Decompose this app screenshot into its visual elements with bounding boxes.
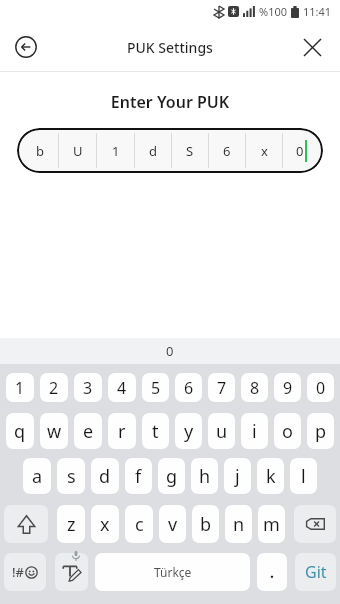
button[interactable]: c bbox=[125, 505, 153, 543]
button[interactable]: z bbox=[57, 505, 85, 543]
staticText: 3 bbox=[83, 377, 93, 399]
staticText: y bbox=[184, 419, 194, 444]
staticText: 11:41 bbox=[303, 4, 332, 19]
button[interactable]: r bbox=[108, 413, 136, 449]
button[interactable]: 8 bbox=[241, 373, 268, 402]
staticText: o bbox=[282, 419, 293, 444]
button[interactable]: . bbox=[257, 553, 287, 591]
button[interactable]: w bbox=[40, 413, 68, 449]
staticText: z bbox=[67, 512, 76, 537]
staticText: . bbox=[270, 563, 274, 582]
button[interactable]: Türkçe bbox=[95, 553, 250, 591]
button[interactable]: b bbox=[192, 505, 219, 543]
staticText: 4 bbox=[117, 377, 127, 399]
staticText: Git bbox=[305, 561, 327, 583]
button[interactable] bbox=[294, 505, 336, 543]
staticText: 0 bbox=[166, 342, 174, 360]
staticText: n bbox=[233, 512, 245, 537]
staticText: Türkçe bbox=[154, 564, 192, 580]
staticText: g bbox=[166, 464, 178, 489]
button[interactable]: j bbox=[224, 458, 251, 494]
staticText: p bbox=[315, 419, 327, 444]
button[interactable]: v bbox=[159, 505, 186, 543]
button[interactable]: d bbox=[91, 458, 119, 494]
button[interactable]: i bbox=[241, 413, 268, 449]
button[interactable]: q bbox=[6, 413, 34, 449]
button[interactable]: a bbox=[23, 458, 51, 494]
staticText: 6 bbox=[223, 142, 231, 160]
staticText: i bbox=[252, 419, 257, 444]
staticText: 1 bbox=[15, 377, 25, 399]
button[interactable]: e bbox=[74, 413, 102, 449]
staticText: q bbox=[14, 419, 26, 444]
button[interactable]: b bbox=[17, 128, 323, 173]
staticText: 6 bbox=[184, 377, 194, 399]
button[interactable]: l bbox=[290, 458, 317, 494]
button[interactable]: 1 bbox=[6, 373, 34, 402]
staticText: l bbox=[301, 464, 306, 489]
staticText: b bbox=[36, 142, 44, 160]
button[interactable]: 3 bbox=[74, 373, 102, 402]
staticText: Enter Your PUK bbox=[0, 91, 340, 113]
staticText: v bbox=[168, 512, 178, 537]
staticText: j bbox=[235, 464, 240, 489]
button[interactable]: 9 bbox=[274, 373, 301, 402]
staticText: e bbox=[83, 419, 94, 444]
staticText: 9 bbox=[283, 377, 293, 399]
staticText: a bbox=[32, 464, 43, 489]
staticText: b bbox=[200, 512, 212, 537]
staticText: d bbox=[149, 142, 157, 160]
staticText: 0 bbox=[316, 377, 326, 399]
staticText: PUK Settings bbox=[127, 38, 213, 57]
button[interactable] bbox=[4, 505, 48, 543]
staticText: 2 bbox=[49, 377, 59, 399]
button[interactable] bbox=[304, 39, 321, 56]
staticText: %100 bbox=[259, 4, 288, 19]
button[interactable]: y bbox=[175, 413, 202, 449]
button[interactable]: 7 bbox=[208, 373, 235, 402]
staticText: x bbox=[100, 512, 110, 537]
staticText: m bbox=[263, 512, 280, 537]
button[interactable]: h bbox=[191, 458, 218, 494]
button[interactable]: 6 bbox=[175, 373, 202, 402]
staticText: k bbox=[266, 464, 276, 489]
button[interactable]: 0 bbox=[307, 373, 334, 402]
button[interactable]: s bbox=[57, 458, 85, 494]
button[interactable]: p bbox=[307, 413, 334, 449]
button[interactable]: 5 bbox=[142, 373, 169, 402]
staticText: r bbox=[118, 419, 126, 444]
button[interactable]: f bbox=[125, 458, 152, 494]
button[interactable]: 2 bbox=[40, 373, 68, 402]
button[interactable]: !# bbox=[4, 553, 46, 591]
staticText: t bbox=[152, 419, 159, 444]
staticText: s bbox=[67, 464, 76, 489]
staticText: f bbox=[135, 464, 142, 489]
staticText: U bbox=[73, 142, 83, 160]
staticText: 1 bbox=[112, 142, 120, 160]
staticText: 5 bbox=[151, 377, 161, 399]
button[interactable]: x bbox=[91, 505, 119, 543]
staticText: d bbox=[99, 464, 111, 489]
button[interactable]: Git bbox=[295, 553, 336, 591]
staticText: u bbox=[216, 419, 228, 444]
staticText: w bbox=[47, 419, 62, 444]
button[interactable]: o bbox=[274, 413, 301, 449]
staticText: 8 bbox=[250, 377, 260, 399]
staticText: h bbox=[199, 464, 211, 489]
button[interactable] bbox=[55, 553, 88, 591]
staticText: c bbox=[135, 512, 144, 537]
staticText: S bbox=[186, 142, 194, 160]
button[interactable]: t bbox=[142, 413, 169, 449]
staticText: !# bbox=[12, 563, 24, 581]
button[interactable]: n bbox=[225, 505, 252, 543]
button[interactable]: 4 bbox=[108, 373, 136, 402]
button[interactable]: k bbox=[257, 458, 284, 494]
staticText: 0 bbox=[296, 142, 304, 160]
staticText: x bbox=[261, 142, 268, 160]
button[interactable] bbox=[15, 36, 37, 58]
button[interactable]: g bbox=[158, 458, 185, 494]
staticText: 7 bbox=[217, 377, 227, 399]
button[interactable]: m bbox=[258, 505, 285, 543]
button[interactable]: u bbox=[208, 413, 235, 449]
